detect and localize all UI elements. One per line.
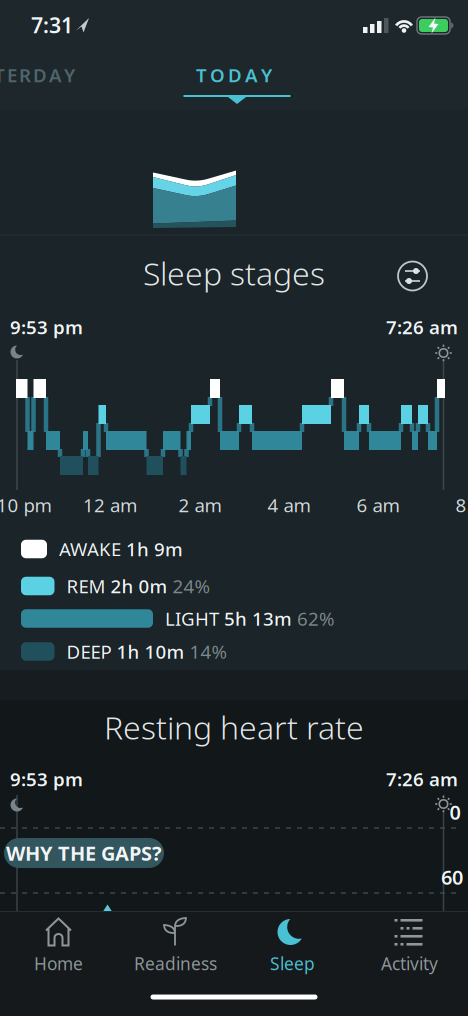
staticText: 6 am <box>356 493 399 517</box>
staticText: 2 am <box>178 493 221 517</box>
staticText: Readiness <box>134 952 217 975</box>
staticText: 7:31 <box>31 11 73 39</box>
staticText: T O D A Y <box>196 63 272 87</box>
button[interactable]: Sleep stage options <box>390 254 434 298</box>
staticText: 7:26 am <box>386 315 458 339</box>
staticText: 12 am <box>83 493 137 517</box>
staticText: 2h 0m <box>110 574 167 598</box>
staticText: 14% <box>189 639 227 664</box>
staticText: WHY THE GAPS? <box>6 840 162 866</box>
staticText: 4 am <box>267 493 310 517</box>
staticText: Sleep <box>270 952 315 975</box>
staticText: Resting heart rate <box>104 706 364 748</box>
staticText: LIGHT <box>165 606 219 631</box>
staticText: 24% <box>172 574 210 598</box>
button[interactable]: T O D A Y <box>149 60 319 90</box>
staticText: 0 <box>449 799 460 825</box>
staticText: 8 <box>455 493 466 517</box>
staticText: 9:53 pm <box>10 767 83 791</box>
staticText: Activity <box>381 952 438 975</box>
staticText: DEEP <box>66 639 111 664</box>
staticText: Sleep stages <box>143 252 325 294</box>
staticText: 62% <box>297 606 335 631</box>
staticText: Home <box>34 952 83 975</box>
button[interactable]: Y E S T E R D A Y <box>0 60 116 90</box>
button[interactable]: Activity <box>354 915 464 977</box>
staticText: 1h 9m <box>126 537 183 561</box>
staticText: 10 pm <box>0 493 51 517</box>
staticText: 1h 10m <box>116 639 184 664</box>
button[interactable]: Sleep <box>237 915 347 977</box>
staticText: 7:26 am <box>386 767 458 791</box>
button[interactable]: Home <box>3 915 113 977</box>
staticText: Y E S T E R D A Y <box>0 63 75 87</box>
staticText: 9:53 pm <box>10 315 83 339</box>
staticText: 5h 13m <box>224 606 292 631</box>
staticText: 60 <box>441 864 463 890</box>
button[interactable]: WHY THE GAPS? <box>4 838 164 868</box>
button[interactable]: Readiness <box>120 915 230 977</box>
staticText: AWAKE <box>59 537 121 561</box>
staticText: REM <box>66 574 105 598</box>
